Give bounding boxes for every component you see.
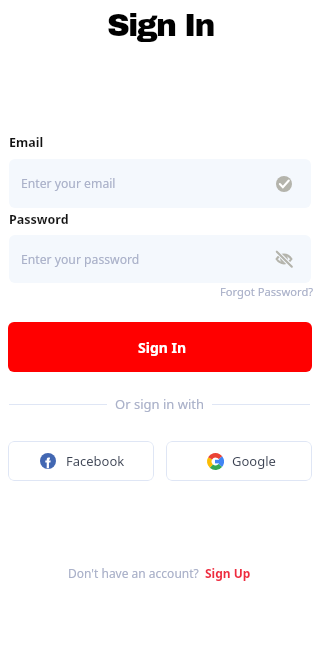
staticText: Google [232, 452, 276, 470]
button[interactable]: Sign Up [205, 565, 251, 581]
button[interactable]: Show password [276, 251, 292, 267]
staticText: Email [9, 134, 44, 151]
staticText: Sign In [138, 338, 187, 357]
button[interactable]: Enter your password [9, 235, 311, 283]
staticText: Don't have an account? [68, 565, 199, 581]
button[interactable]: Facebook [8, 441, 154, 481]
staticText: Enter your password [21, 251, 140, 268]
button[interactable]: Forgot Password? [220, 284, 314, 299]
button[interactable]: Google [166, 441, 312, 481]
button[interactable]: Enter your email [9, 159, 311, 208]
staticText: Sign In [1, 8, 319, 42]
staticText: Enter your email [21, 175, 116, 192]
other: Email valid [276, 176, 292, 192]
staticText: Facebook [66, 452, 125, 470]
staticText: Password [9, 211, 69, 228]
button[interactable]: Sign In [8, 322, 312, 372]
staticText: Or sign in with [115, 395, 204, 413]
